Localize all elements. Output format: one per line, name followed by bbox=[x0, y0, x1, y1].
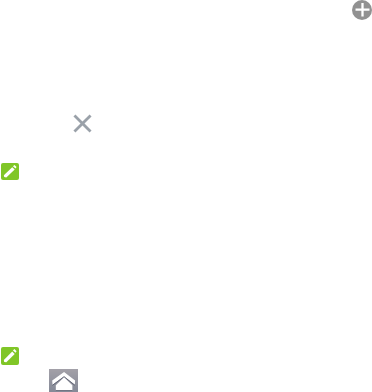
button[interactable]: Close bbox=[74, 115, 91, 132]
button[interactable]: Add bbox=[352, 0, 372, 20]
button[interactable]: Edit bbox=[1, 163, 19, 180]
button[interactable]: Edit bbox=[1, 347, 19, 365]
button[interactable]: Home bbox=[49, 369, 78, 392]
